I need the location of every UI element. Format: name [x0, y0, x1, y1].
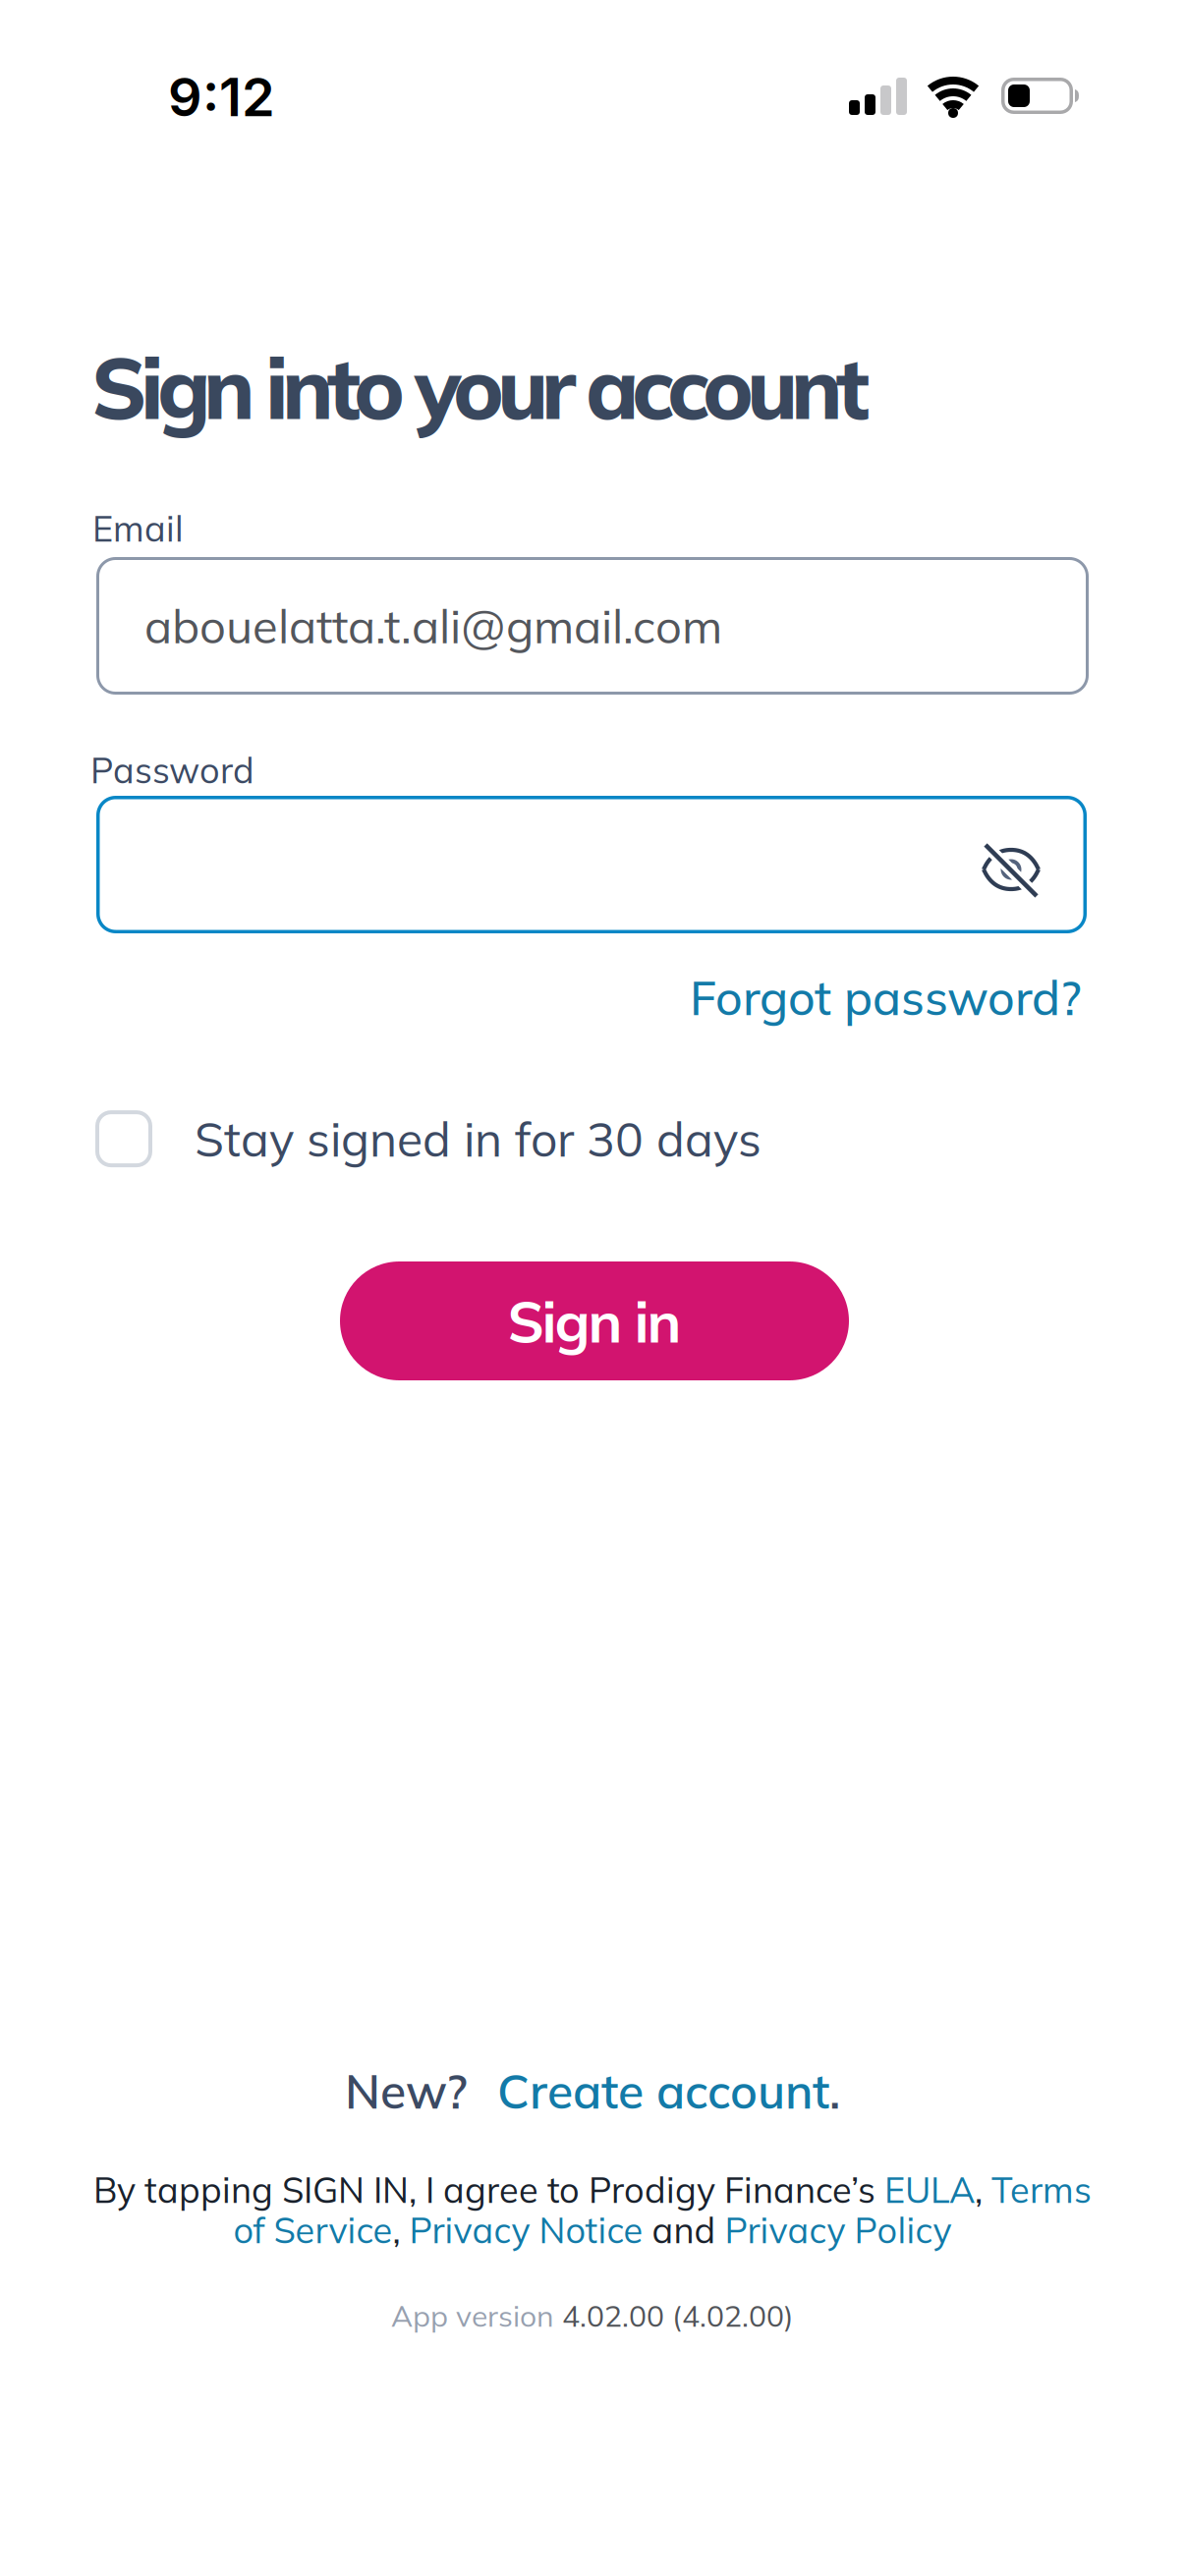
button[interactable]: Show password [983, 844, 1040, 897]
staticText: Sign in [508, 1285, 681, 1357]
staticText: By tapping SIGN IN, I agree to Prodigy F… [93, 2167, 884, 2212]
staticText: of Service [233, 2208, 393, 2252]
staticText: Email [92, 506, 184, 550]
button[interactable]: Email [96, 557, 1089, 695]
staticText: 9:12 [168, 65, 275, 129]
button[interactable]: Sign in [340, 1261, 849, 1380]
staticText: and [643, 2208, 725, 2252]
staticText: Stay signed in for 30 days [195, 1109, 762, 1168]
button[interactable]: Stay signed in for 30 days [95, 1109, 762, 1168]
staticText: EULA [884, 2167, 975, 2212]
staticText: Privacy Policy [725, 2208, 952, 2252]
button[interactable]: Terms [991, 2167, 1092, 2212]
button[interactable]: of Service [233, 2208, 393, 2252]
staticText: abouelatta.t.ali@gmail.com [144, 597, 722, 655]
staticText: Password [90, 748, 254, 792]
button[interactable]: Privacy Notice [409, 2208, 643, 2252]
staticText: Create account [497, 2061, 829, 2120]
button[interactable]: Privacy Policy [725, 2208, 952, 2252]
staticText: Terms [991, 2167, 1092, 2212]
button[interactable]: Forgot password? [690, 968, 1082, 1027]
staticText: , [975, 2167, 991, 2212]
staticText: Privacy Notice [409, 2208, 643, 2252]
button[interactable]: EULA [884, 2167, 975, 2212]
button[interactable]: Password [96, 796, 1087, 933]
staticText: Forgot password? [690, 968, 1082, 1027]
staticText: . [829, 2061, 840, 2120]
staticText: New? [345, 2061, 468, 2120]
staticText: Sign into your account [91, 334, 870, 440]
staticText: 4.02.00 (4.02.00) [562, 2297, 794, 2334]
staticText: App version [391, 2297, 562, 2334]
button[interactable]: Create account [497, 2061, 829, 2120]
staticText: , [393, 2208, 409, 2252]
